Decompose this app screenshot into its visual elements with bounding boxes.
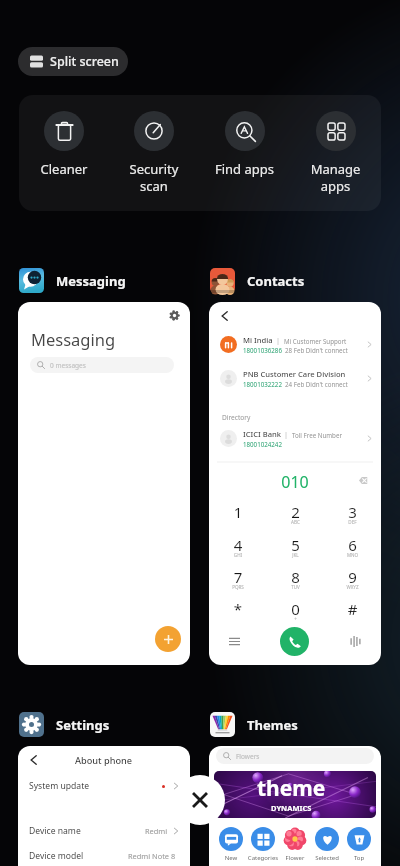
staticText: Device name	[29, 825, 145, 837]
button[interactable]: Flowers	[209, 746, 381, 866]
staticText: Messaging	[31, 328, 116, 350]
staticText: PQRS	[209, 584, 267, 590]
button[interactable]: About phone	[18, 746, 190, 866]
button[interactable]: Messaging	[19, 268, 126, 293]
staticText: ABC	[267, 519, 324, 525]
button[interactable]: Manage apps	[290, 95, 381, 211]
staticText: +	[267, 616, 324, 622]
staticText: theme	[257, 774, 326, 803]
staticText: 9	[324, 567, 381, 587]
button[interactable]: Close all	[175, 775, 225, 825]
staticText: 7	[209, 567, 267, 587]
button[interactable]: 4	[209, 529, 267, 561]
staticText: 3	[324, 502, 381, 522]
button[interactable]: Menu	[224, 631, 244, 651]
staticText: 24 Feb Didn't connect	[285, 380, 348, 388]
staticText: Flower	[279, 854, 311, 862]
button[interactable]: Settings	[18, 302, 190, 665]
staticText: Contacts	[247, 272, 305, 290]
staticText: ICICI Bank	[243, 429, 281, 439]
staticText: Toll Free Number	[292, 431, 342, 439]
button[interactable]: Flower	[279, 827, 311, 862]
staticText: 0 messages	[50, 361, 86, 370]
staticText: DYNAMICS	[271, 803, 312, 813]
staticText: #	[324, 599, 381, 619]
button[interactable]: 6	[324, 529, 381, 561]
other: Delete	[359, 477, 368, 484]
button[interactable]: PNB Customer Care Division	[209, 363, 381, 393]
other: Back	[29, 755, 39, 765]
staticText: Find apps	[199, 160, 290, 178]
staticText: About phone	[75, 754, 133, 767]
staticText: |	[281, 430, 292, 439]
staticText: Flowers	[236, 752, 260, 761]
staticText: Categories	[247, 854, 279, 862]
button[interactable]: Keypad	[345, 631, 365, 651]
staticText: 18001032222	[243, 380, 282, 388]
button[interactable]: Device name	[18, 819, 190, 843]
button[interactable]: Mi India	[209, 329, 381, 359]
staticText: 1	[209, 502, 267, 522]
staticText: 8	[267, 567, 324, 587]
button[interactable]: Cleaner	[19, 95, 109, 211]
staticText: New	[215, 854, 247, 862]
button[interactable]: Flowers	[216, 748, 374, 764]
staticText: 010	[209, 471, 381, 493]
button[interactable]: Selected	[311, 827, 343, 862]
button[interactable]: 1	[209, 496, 267, 528]
staticText: Top	[343, 854, 375, 862]
staticText: Device model	[29, 850, 128, 862]
staticText: Settings	[56, 716, 110, 734]
button[interactable]: 9	[324, 561, 381, 593]
staticText: Messaging	[56, 272, 126, 290]
button[interactable]: #	[324, 593, 381, 625]
staticText: WXYZ	[324, 584, 381, 590]
staticText: System update	[29, 780, 162, 792]
other: Back	[220, 311, 230, 321]
button[interactable]: 5	[267, 529, 324, 561]
staticText: JKL	[267, 552, 324, 558]
button[interactable]: *	[209, 593, 267, 625]
staticText: Themes	[247, 716, 298, 734]
staticText: 0	[267, 599, 324, 619]
button[interactable]: New message	[155, 626, 181, 652]
staticText: MNO	[324, 552, 381, 558]
button[interactable]: ICICI Bank	[209, 423, 381, 453]
staticText: |	[273, 336, 284, 345]
staticText: 28 Feb Didn't connect	[285, 346, 348, 354]
button[interactable]: Settings	[165, 306, 183, 324]
staticText: 6	[324, 535, 381, 555]
staticText: TUV	[267, 584, 324, 590]
button[interactable]: 3	[324, 496, 381, 528]
button[interactable]: Contacts	[210, 268, 305, 293]
button[interactable]: Categories	[247, 827, 279, 862]
button[interactable]: 7	[209, 561, 267, 593]
button[interactable]: Settings	[19, 712, 110, 737]
staticText: *	[209, 599, 267, 619]
staticText: 4	[209, 535, 267, 555]
staticText: Mi Customer Support	[284, 337, 347, 345]
button[interactable]: Security scan	[109, 95, 199, 211]
staticText: Manage apps	[290, 160, 381, 195]
button[interactable]: 0	[267, 593, 324, 625]
button[interactable]: New	[215, 827, 247, 862]
button[interactable]: Back	[209, 302, 381, 665]
staticText: Selected	[311, 854, 343, 862]
staticText: Redmi	[145, 826, 168, 836]
button[interactable]: Find apps	[199, 95, 290, 211]
button[interactable]: Device model	[18, 844, 190, 866]
button[interactable]: System update	[18, 774, 190, 798]
button[interactable]: Call	[280, 627, 309, 656]
staticText: Security scan	[109, 160, 199, 195]
button[interactable]: 2	[267, 496, 324, 528]
staticText: 5	[267, 535, 324, 555]
button[interactable]: Top	[343, 827, 375, 862]
button[interactable]: 8	[267, 561, 324, 593]
staticText: Mi India	[243, 335, 273, 345]
staticText: Redmi Note 8	[128, 851, 176, 861]
button[interactable]: Themes	[210, 712, 298, 737]
button[interactable]: 0 messages	[30, 357, 174, 373]
button[interactable]: Split screen	[18, 47, 128, 76]
staticText: GHI	[209, 552, 267, 558]
staticText: Directory	[222, 413, 251, 422]
